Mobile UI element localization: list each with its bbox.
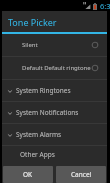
button[interactable]: Cancel <box>56 166 106 183</box>
staticText: Other Apps <box>20 150 55 159</box>
button[interactable]: System Notifications <box>2 102 107 123</box>
button[interactable]: System Ringtones <box>2 80 107 101</box>
staticText: OK <box>23 170 33 179</box>
staticText: System Ringtones <box>16 86 71 95</box>
staticText: Cancel <box>71 170 92 179</box>
staticText: 6:34 <box>100 1 110 11</box>
button[interactable]: Default Default ringtone (Unkn <box>2 57 107 79</box>
staticText: Tone Picker <box>8 16 57 28</box>
button[interactable]: System Alarms <box>2 124 107 145</box>
button[interactable]: Silent <box>2 34 107 56</box>
staticText: Silent <box>22 41 91 49</box>
button[interactable]: Other Apps <box>2 146 107 163</box>
staticText: System Alarms <box>16 130 62 139</box>
staticText: Default Default ringtone (Unkn <box>22 64 91 72</box>
button[interactable]: OK <box>3 166 53 183</box>
staticText: System Notifications <box>16 108 79 117</box>
